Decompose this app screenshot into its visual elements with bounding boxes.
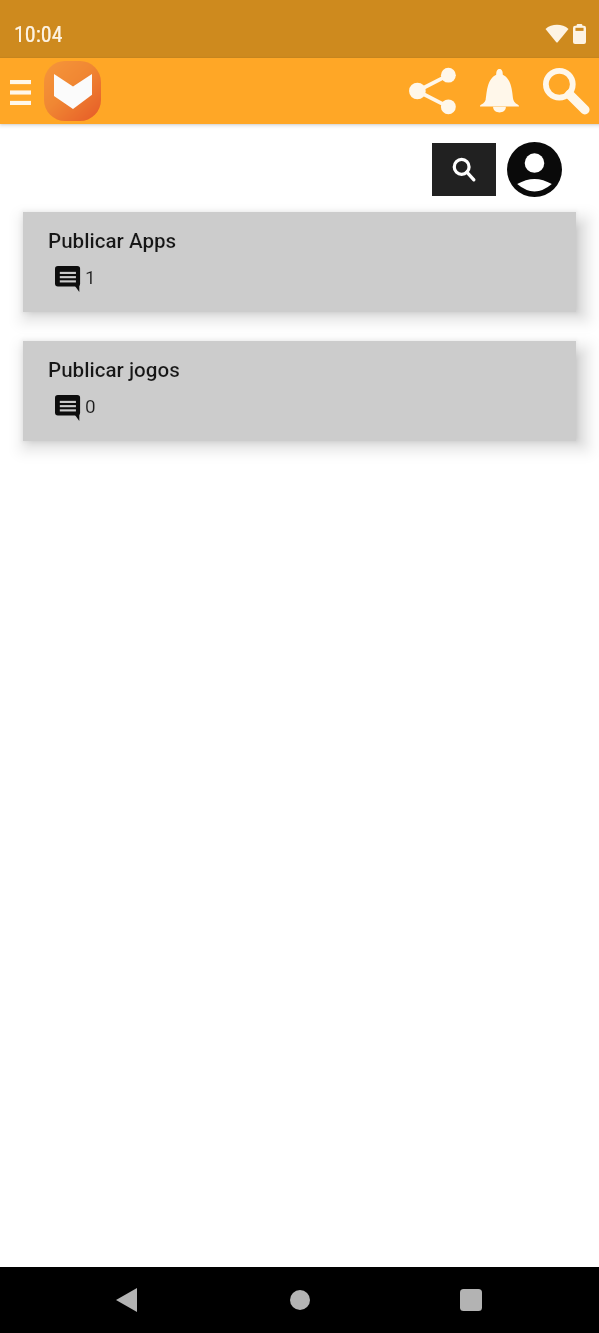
button[interactable]: Publicar Apps [23, 212, 576, 312]
button[interactable]: Aptoide [44, 61, 101, 121]
staticText: 1 [85, 266, 96, 288]
button[interactable]: Recents [411, 1267, 531, 1333]
button[interactable]: Notifications [466, 58, 532, 124]
button[interactable]: Menu [0, 72, 40, 112]
button[interactable]: Search [533, 57, 599, 123]
button[interactable]: Back [66, 1267, 186, 1333]
button[interactable]: Search [432, 143, 496, 196]
staticText: Publicar Apps [48, 229, 177, 253]
button[interactable]: Account [507, 142, 562, 197]
button[interactable]: Share [400, 58, 466, 124]
staticText: Publicar jogos [48, 358, 180, 382]
button[interactable]: Publicar jogos [23, 341, 576, 441]
staticText: 0 [85, 395, 96, 417]
staticText: 10:04 [14, 22, 63, 48]
button[interactable]: Home [240, 1267, 360, 1333]
